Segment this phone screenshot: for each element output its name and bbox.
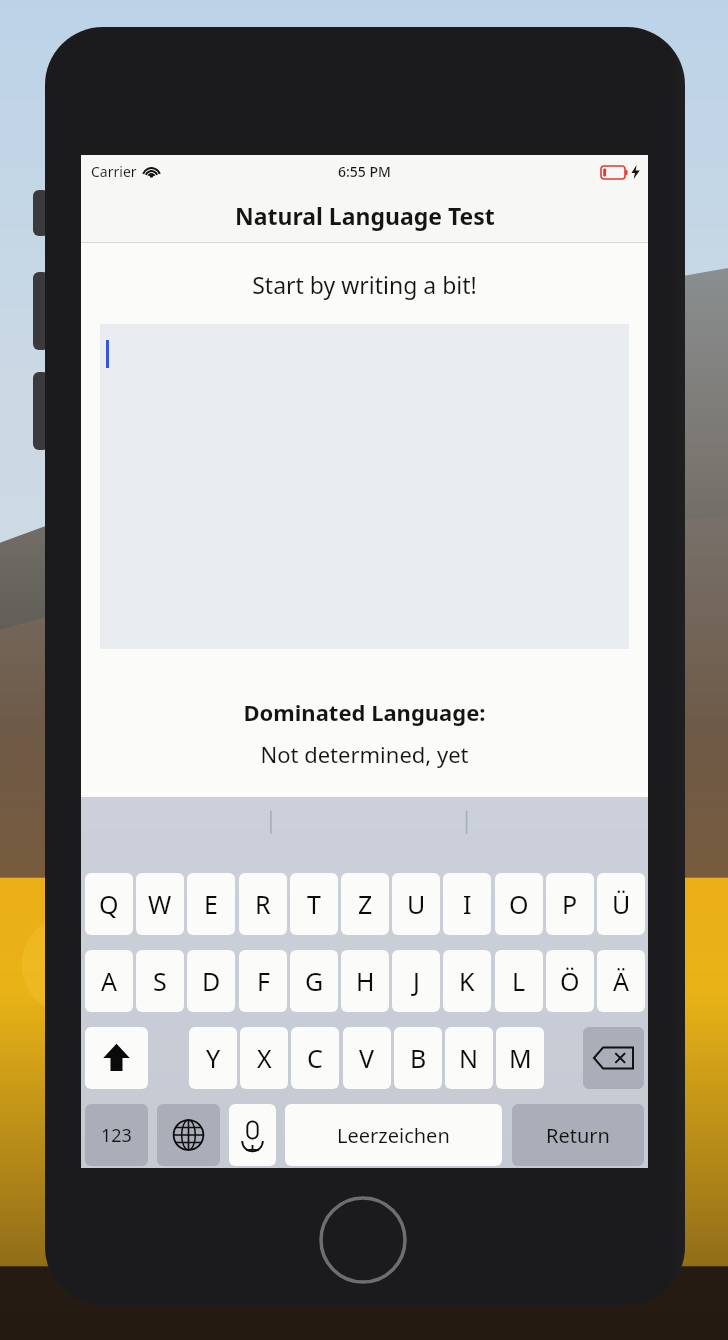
staticText: X bbox=[257, 1041, 272, 1075]
staticText: Ü bbox=[612, 887, 631, 921]
staticText: Ö bbox=[560, 964, 580, 998]
button[interactable]: R bbox=[239, 873, 287, 935]
button[interactable]: V bbox=[343, 1027, 391, 1089]
staticText: G bbox=[305, 964, 324, 998]
staticText: Dominated Language: bbox=[81, 697, 648, 727]
button[interactable]: N bbox=[445, 1027, 493, 1089]
button[interactable]: L bbox=[495, 950, 543, 1012]
staticText: L bbox=[512, 964, 526, 998]
button[interactable]: Next keyboard bbox=[157, 1104, 220, 1166]
button[interactable]: C bbox=[291, 1027, 339, 1089]
button[interactable]: K bbox=[443, 950, 491, 1012]
button[interactable]: B bbox=[394, 1027, 442, 1089]
staticText: S bbox=[153, 964, 167, 998]
button[interactable]: Backspace bbox=[583, 1027, 644, 1089]
staticText: 6:55 PM bbox=[338, 162, 391, 181]
button[interactable]: S bbox=[136, 950, 184, 1012]
staticText: H bbox=[356, 964, 375, 998]
button[interactable]: Ä bbox=[597, 950, 645, 1012]
button[interactable]: Y bbox=[189, 1027, 237, 1089]
button[interactable]: E bbox=[187, 873, 235, 935]
staticText: N bbox=[459, 1041, 479, 1075]
button[interactable]: Q bbox=[85, 873, 133, 935]
button[interactable]: P bbox=[546, 873, 594, 935]
button[interactable]: W bbox=[136, 873, 184, 935]
button[interactable]: D bbox=[187, 950, 235, 1012]
button[interactable]: O bbox=[495, 873, 543, 935]
staticText: E bbox=[204, 887, 218, 921]
staticText: P bbox=[562, 887, 578, 921]
button[interactable]: X bbox=[240, 1027, 288, 1089]
staticText: A bbox=[101, 964, 117, 998]
staticText: Leerzeichen bbox=[337, 1122, 450, 1149]
staticText: K bbox=[459, 964, 475, 998]
staticText: Y bbox=[206, 1041, 221, 1075]
staticText: T bbox=[307, 887, 321, 921]
staticText: D bbox=[202, 964, 221, 998]
staticText: U bbox=[407, 887, 426, 921]
button[interactable]: F bbox=[239, 950, 287, 1012]
staticText: Start by writing a bit! bbox=[81, 269, 648, 300]
staticText: Not determined, yet bbox=[81, 739, 648, 769]
staticText: Ä bbox=[613, 964, 629, 998]
staticText: B bbox=[410, 1041, 427, 1075]
staticText: V bbox=[359, 1041, 375, 1075]
button[interactable] bbox=[100, 324, 629, 649]
button[interactable]: A bbox=[85, 950, 133, 1012]
staticText: I bbox=[463, 887, 472, 921]
staticText: 123 bbox=[101, 1123, 132, 1148]
button[interactable]: Shift bbox=[85, 1027, 148, 1089]
staticText: Q bbox=[99, 887, 119, 921]
button[interactable]: Leerzeichen bbox=[285, 1104, 502, 1166]
button[interactable]: H bbox=[341, 950, 389, 1012]
staticText: C bbox=[307, 1041, 323, 1075]
button[interactable]: M bbox=[496, 1027, 544, 1089]
button[interactable]: J bbox=[392, 950, 440, 1012]
staticText: R bbox=[255, 887, 271, 921]
staticText: Z bbox=[358, 887, 373, 921]
button[interactable]: Return bbox=[512, 1104, 644, 1166]
staticText: J bbox=[413, 964, 420, 998]
staticText: W bbox=[148, 887, 172, 921]
staticText: O bbox=[509, 887, 529, 921]
staticText: Return bbox=[546, 1122, 610, 1149]
staticText: Carrier bbox=[91, 162, 137, 181]
staticText: Natural Language Test bbox=[235, 200, 495, 231]
button[interactable]: Z bbox=[341, 873, 389, 935]
button[interactable]: 123 bbox=[85, 1104, 148, 1166]
button[interactable]: T bbox=[290, 873, 338, 935]
button[interactable]: Dictation bbox=[229, 1104, 276, 1166]
button[interactable]: G bbox=[290, 950, 338, 1012]
staticText: F bbox=[257, 964, 270, 998]
button[interactable]: U bbox=[392, 873, 440, 935]
staticText: M bbox=[509, 1041, 532, 1075]
button[interactable]: Ö bbox=[546, 950, 594, 1012]
button[interactable]: I bbox=[443, 873, 491, 935]
button[interactable]: Ü bbox=[597, 873, 645, 935]
